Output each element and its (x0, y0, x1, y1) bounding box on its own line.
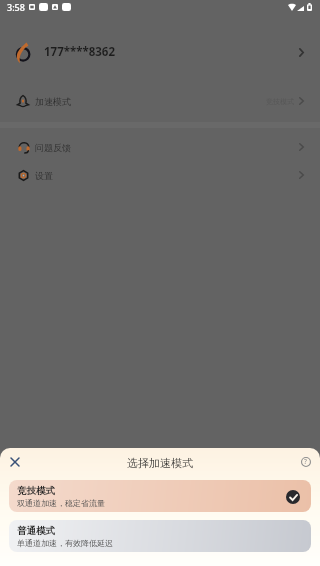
staticText: 177****8362 (44, 44, 115, 60)
staticText: 普通模式 (17, 525, 55, 537)
button[interactable]: 竞技模式 (9, 480, 311, 512)
staticText: 双通道加速，稳定省流量 (17, 498, 105, 508)
staticText: 设置 (35, 170, 53, 181)
staticText: 3:58 (7, 1, 25, 13)
button[interactable]: 加速模式 (0, 86, 320, 116)
staticText: 问题反馈 (35, 142, 71, 153)
button[interactable]: Close (5, 452, 24, 471)
button[interactable]: Help (296, 452, 315, 471)
staticText: 选择加速模式 (127, 456, 193, 470)
staticText: 竞技模式 (17, 485, 55, 497)
button[interactable]: 问题反馈 (0, 134, 320, 160)
staticText: ? (304, 457, 307, 466)
button[interactable]: 177****8362 (0, 31, 320, 73)
button[interactable]: 普通模式 (9, 520, 311, 552)
staticText: 单通道加速，有效降低延迟 (17, 538, 113, 548)
button[interactable]: 设置 (0, 162, 320, 188)
staticText: 加速模式 (35, 96, 71, 107)
